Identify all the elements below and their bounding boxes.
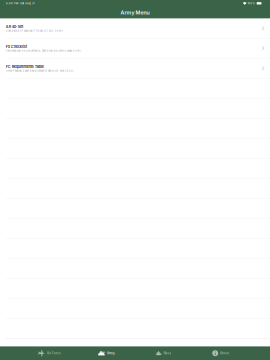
button[interactable]: FC Requirements Table xyxy=(0,59,270,79)
staticText: 100% xyxy=(247,2,257,5)
button[interactable]: Navy xyxy=(135,346,192,360)
staticText: FS Checklist xyxy=(6,44,27,49)
button[interactable]: AR 40-501 xyxy=(0,19,270,39)
staticText: Navy xyxy=(163,351,171,355)
staticText: Aeromedical Policy Letters & Technical B… xyxy=(6,49,81,52)
staticText: Air Force xyxy=(47,351,61,355)
staticText: Sat Aug 31 xyxy=(18,2,35,5)
staticText: 6:00 PM xyxy=(6,2,18,5)
staticText: Army Physical Exam Requirements Table (1… xyxy=(6,69,74,72)
button[interactable]: About xyxy=(192,346,249,360)
staticText: Standards of Medical Fitness (27 Jun 201… xyxy=(6,29,63,32)
button[interactable]: FS Checklist xyxy=(0,39,270,59)
staticText: Army xyxy=(107,351,115,355)
button[interactable]: Air Force xyxy=(21,346,78,360)
staticText: Army Menu xyxy=(120,9,149,16)
staticText: FC Requirements Table xyxy=(6,64,44,69)
staticText: AR 40-501 xyxy=(6,24,24,29)
button[interactable]: Army xyxy=(78,346,135,360)
staticText: About xyxy=(220,351,229,355)
